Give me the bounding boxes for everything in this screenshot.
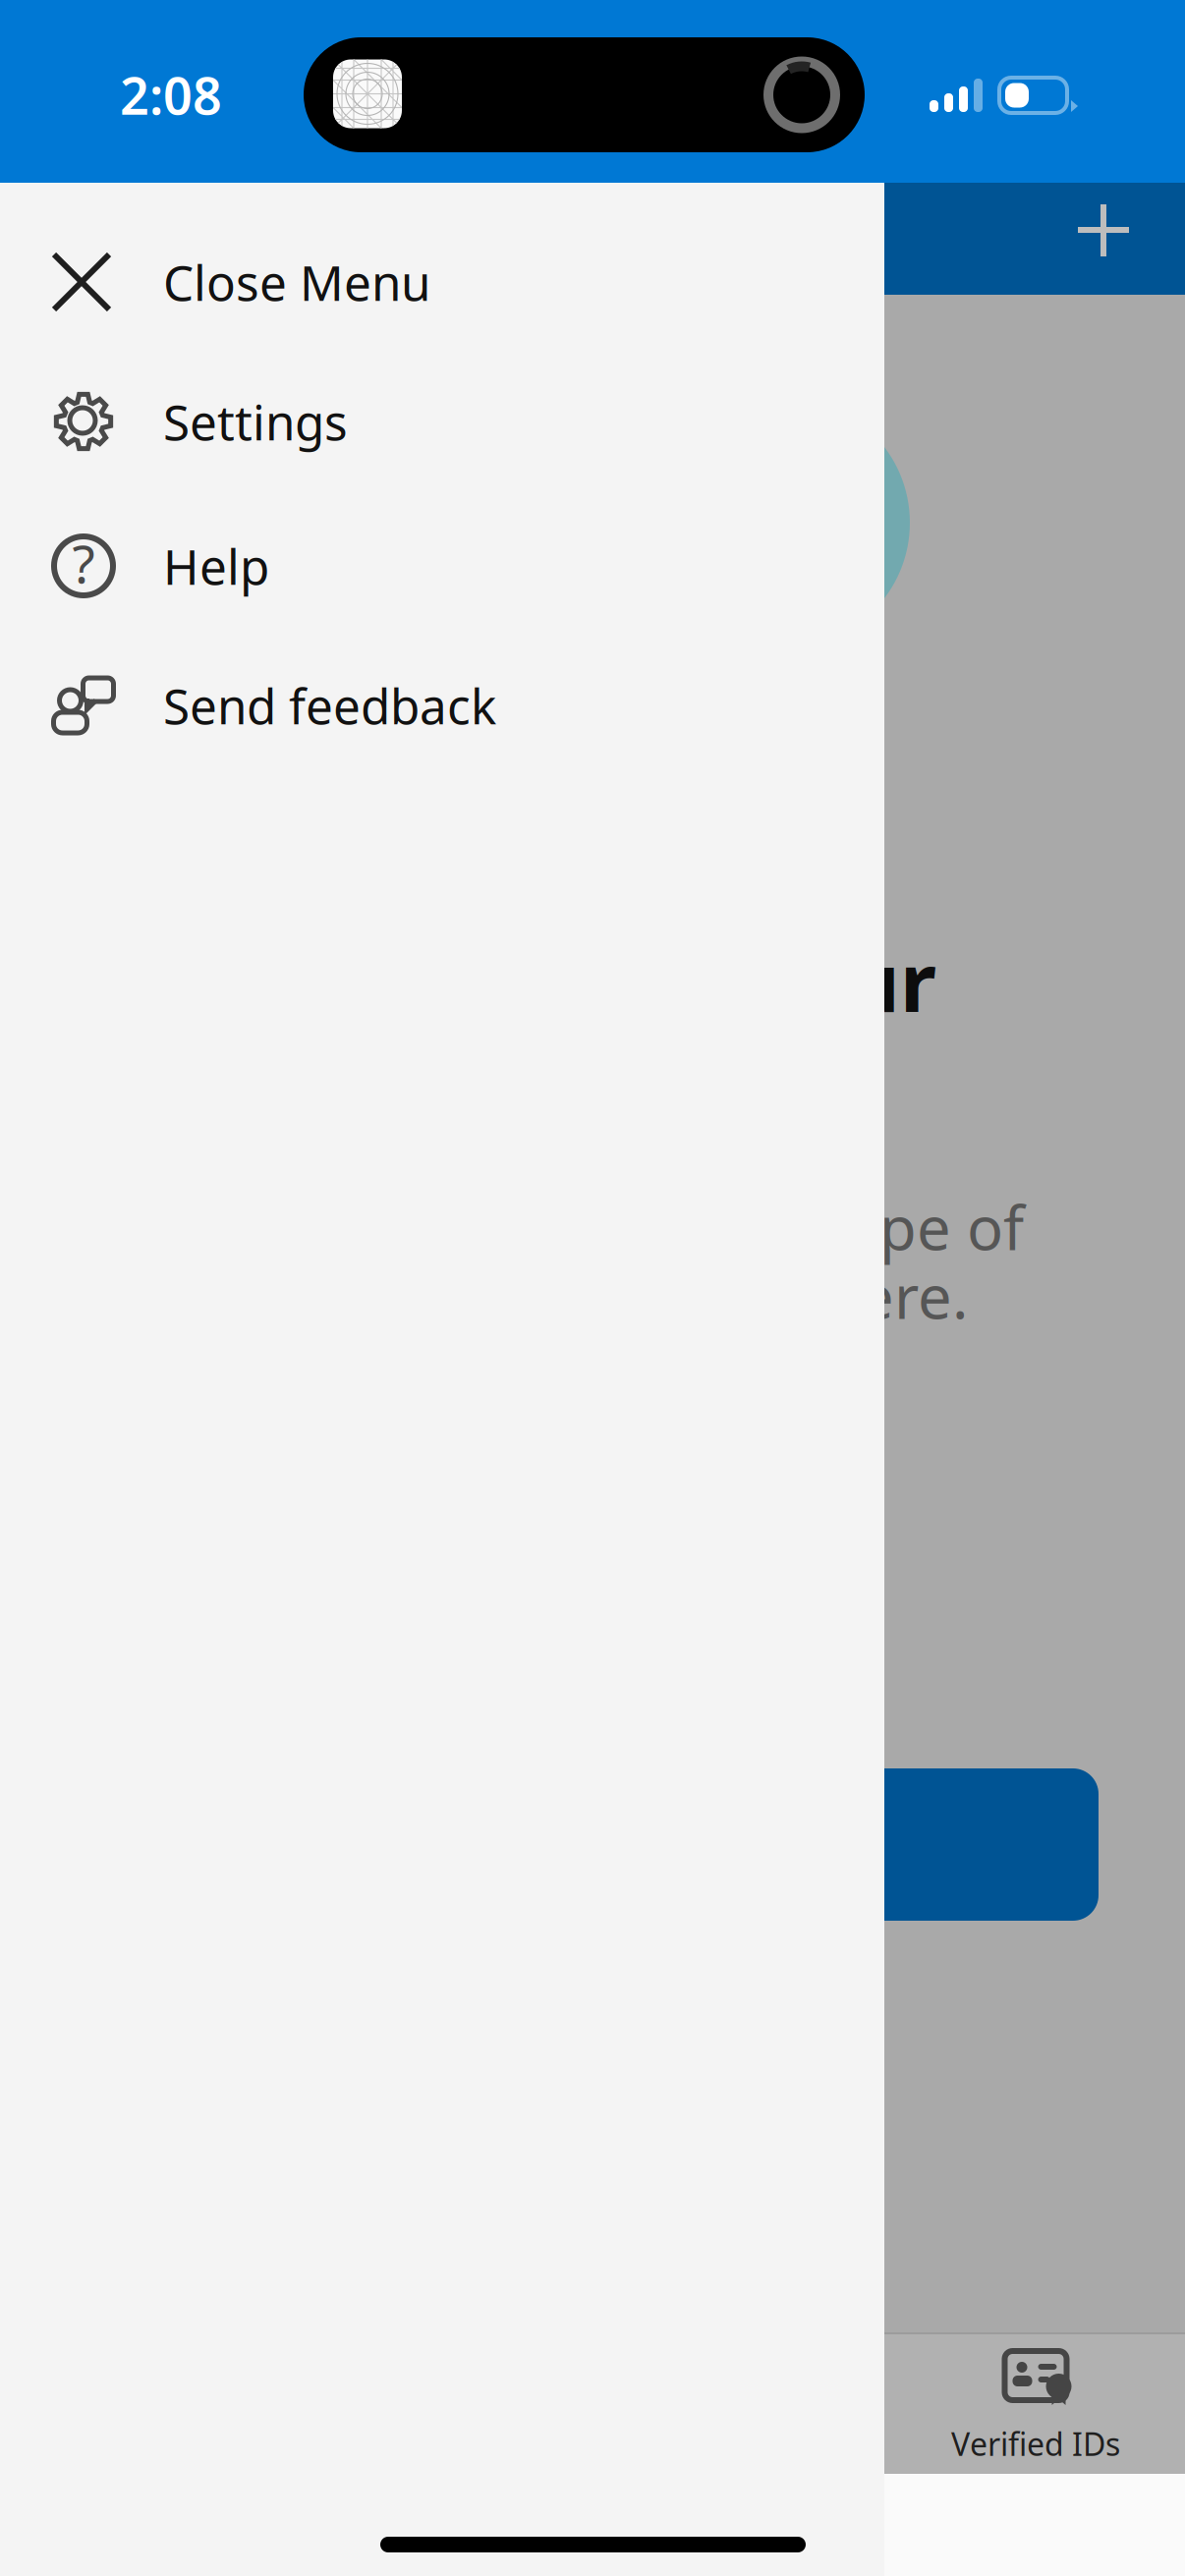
- button[interactable]: Settings: [0, 352, 884, 491]
- button[interactable]: Send feedback: [0, 636, 884, 775]
- staticText: Help: [163, 534, 269, 598]
- button[interactable]: Verified IDs: [917, 2327, 1155, 2467]
- staticText: 2:08: [120, 61, 222, 129]
- staticText: Close Menu: [163, 250, 430, 314]
- staticText: Verified IDs: [951, 2423, 1120, 2464]
- button[interactable]: Close Menu: [0, 212, 884, 352]
- staticText: Secure your: [458, 926, 936, 1034]
- button[interactable]: ?: [0, 496, 884, 636]
- staticText: goes here.: [670, 1256, 968, 1336]
- staticText: Any type of: [705, 1187, 1024, 1267]
- staticText: ?: [72, 528, 95, 598]
- staticText: Settings: [163, 389, 348, 454]
- button[interactable]: Add account: [1056, 183, 1151, 277]
- staticText: Send feedback: [163, 673, 496, 738]
